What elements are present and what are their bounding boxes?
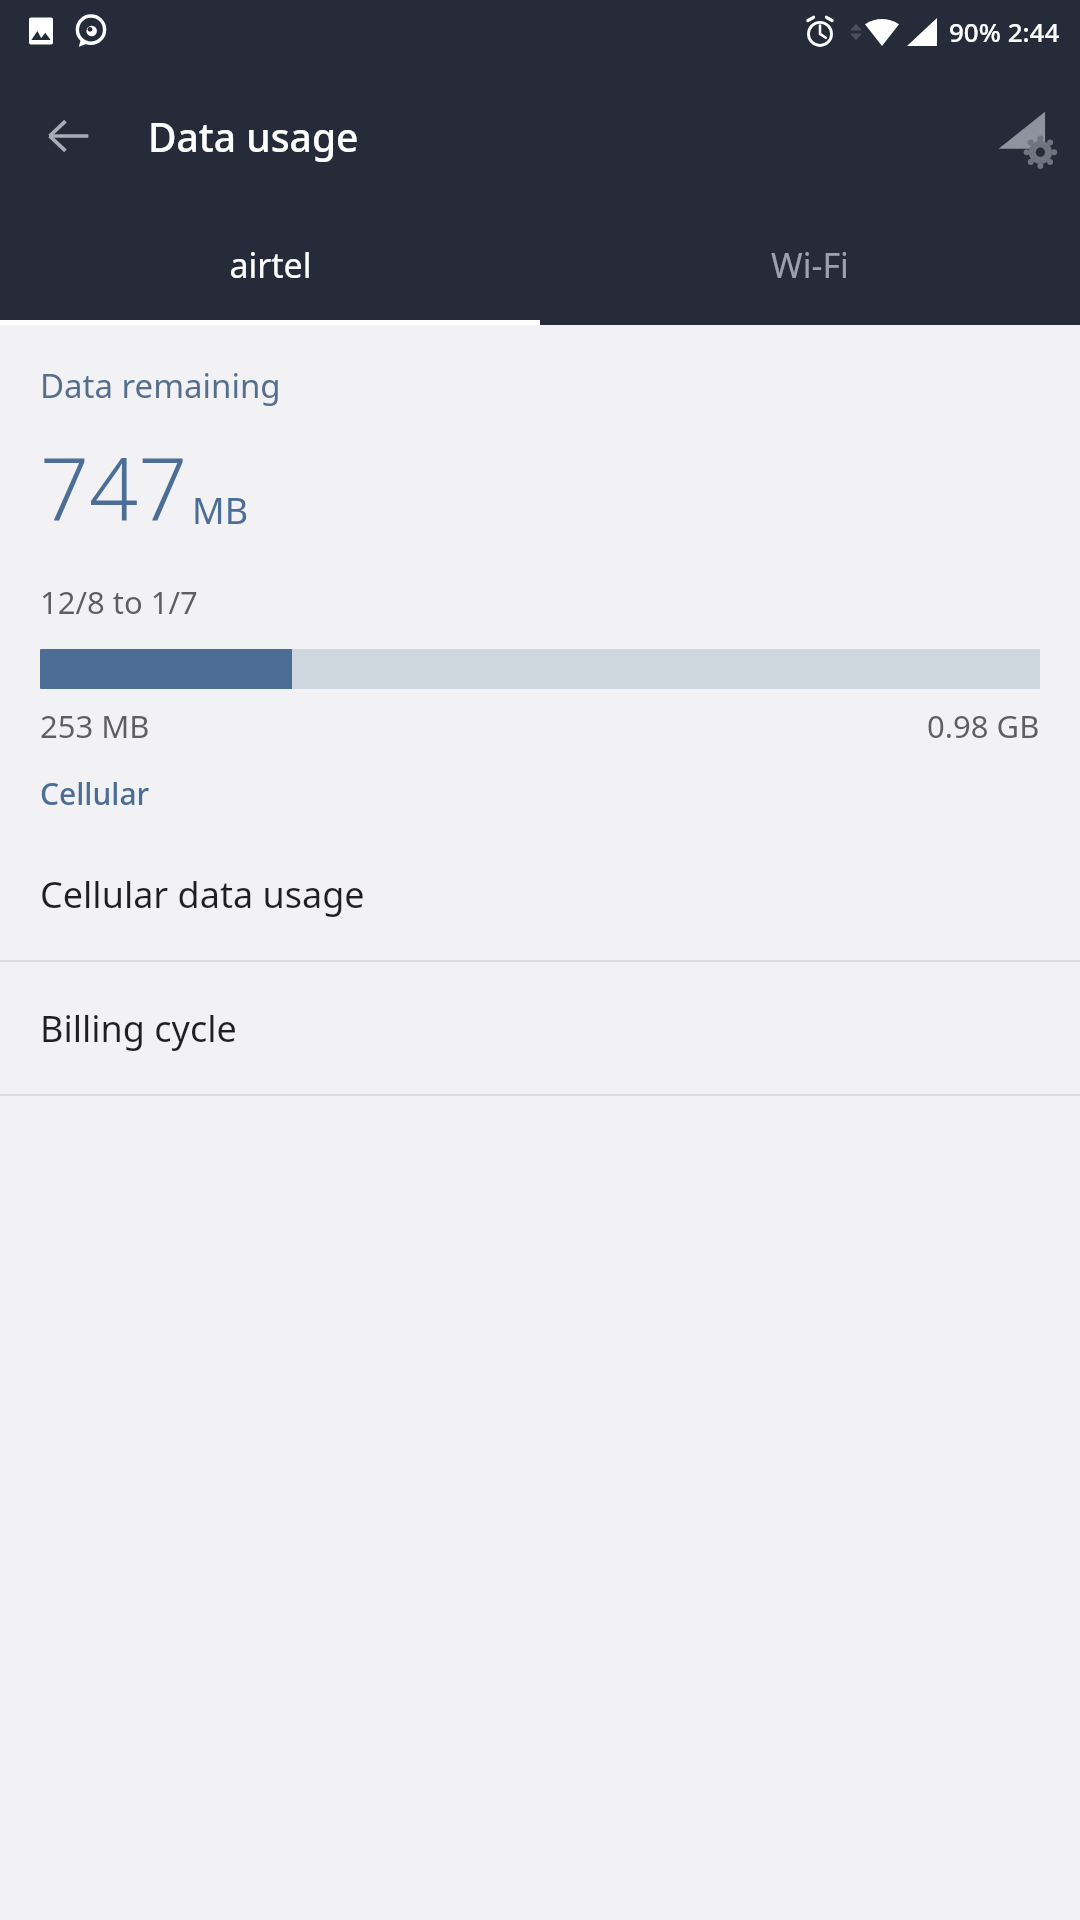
button[interactable]: Wi-Fi (540, 210, 1080, 320)
button[interactable]: airtel (0, 210, 540, 320)
staticText: Cellular data usage (40, 870, 365, 919)
staticText: Wi-Fi (771, 242, 849, 288)
staticText: 253 MB (40, 705, 150, 747)
button[interactable]: Network settings (980, 93, 1066, 179)
staticText: 0.98 GB (927, 705, 1040, 747)
staticText: Data usage (148, 110, 359, 163)
button[interactable]: Cellular data usage (0, 828, 1080, 960)
staticText: 90% 2:44 (949, 14, 1060, 49)
staticText: airtel (229, 242, 312, 288)
staticText: 12/8 to 1/7 (40, 581, 198, 623)
staticText: Cellular (40, 773, 150, 814)
button[interactable]: Back (26, 93, 112, 179)
staticText: 747 (40, 428, 188, 545)
button[interactable]: Billing cycle (0, 962, 1080, 1094)
staticText: Billing cycle (40, 1004, 237, 1053)
staticText: Data remaining (40, 363, 281, 408)
staticText: MB (192, 486, 249, 535)
